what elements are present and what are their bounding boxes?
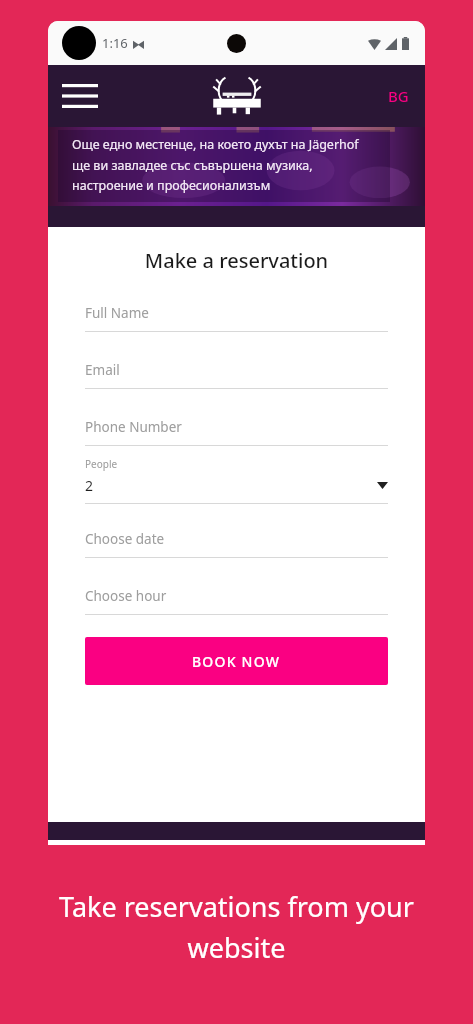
staticText: BOOK NOW (192, 652, 281, 671)
staticText: Email (85, 361, 120, 379)
button[interactable]: Choose date (85, 530, 388, 558)
button[interactable]: People (85, 457, 388, 504)
button[interactable]: BOOK NOW (85, 637, 388, 685)
staticText: Make a reservation (85, 247, 388, 274)
staticText: Choose date (85, 530, 165, 548)
button[interactable]: Full Name (85, 304, 388, 332)
staticText: Още едно местенце, на което духът на Jäg… (72, 136, 359, 193)
staticText: 2 (85, 476, 94, 495)
button[interactable]: BG (388, 86, 409, 106)
button[interactable]: Open menu (58, 74, 102, 118)
staticText: Choose hour (85, 587, 167, 605)
button[interactable]: Choose hour (85, 587, 388, 615)
staticText: 1:16 (102, 34, 128, 52)
staticText: Phone Number (85, 418, 182, 436)
staticText: Full Name (85, 304, 149, 322)
staticText: BG (388, 86, 409, 106)
staticText: Take reservations from your website (14, 888, 459, 966)
button[interactable]: Jagerhof logo (201, 75, 273, 119)
button[interactable]: Email (85, 361, 388, 389)
button[interactable]: Phone Number (85, 418, 388, 446)
staticText: People (85, 457, 118, 471)
